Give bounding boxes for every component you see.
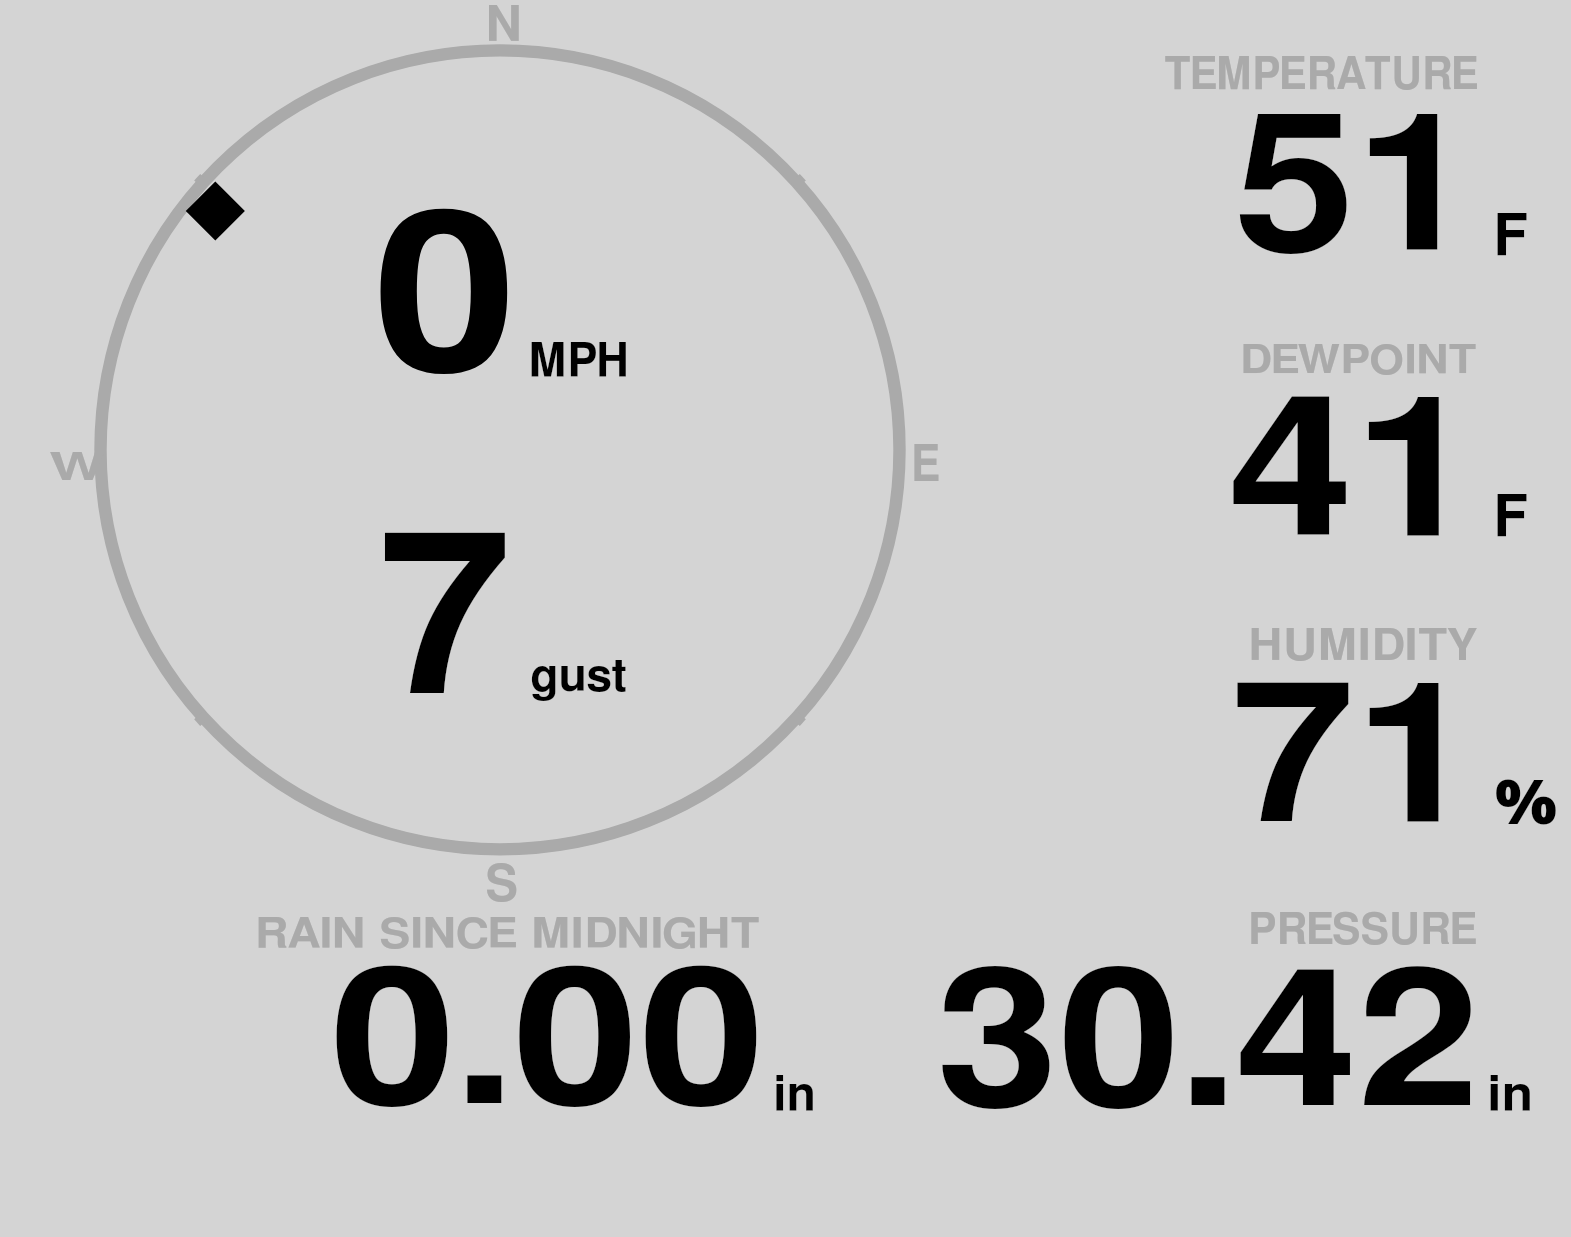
staticText: 7 (378, 513, 513, 738)
staticText: F (1493, 490, 1529, 548)
staticText: MPH (528, 340, 630, 386)
staticText: % (1495, 757, 1558, 842)
staticText: 0 (373, 192, 518, 413)
staticText: W (49, 450, 107, 488)
staticText: RAIN SINCE MIDNIGHT (255, 914, 760, 956)
staticText: 71 (1231, 666, 1478, 860)
staticText: 0.00 (330, 951, 765, 1141)
staticText: 30.42 (936, 952, 1480, 1143)
staticText: TEMPERATURE (1164, 53, 1479, 98)
button[interactable]: Temperature 51 degrees Fahrenheit (1000, 30, 1560, 300)
button[interactable]: Pressure 30.42 inches (880, 895, 1560, 1135)
button[interactable]: Humidity 71 percent (1000, 595, 1560, 865)
staticText: N (485, 1, 523, 51)
staticText: 41 (1228, 379, 1479, 574)
staticText: E (911, 441, 941, 491)
staticText: 51 (1234, 97, 1476, 288)
staticText: HUMIDITY (1248, 624, 1478, 668)
staticText: PRESSURE (1248, 909, 1478, 952)
staticText: in (773, 1072, 816, 1121)
button[interactable]: Rain since midnight 0.00 inches (170, 895, 850, 1135)
other: Weather station dashboard (0, 0, 1571, 1237)
staticText: in (1487, 1072, 1533, 1121)
button[interactable]: Dewpoint 41 degrees Fahrenheit (1000, 310, 1560, 580)
staticText: F (1493, 208, 1529, 266)
staticText: gust (530, 654, 627, 700)
button[interactable]: Wind dial, 0 miles per hour, gusting 7 (60, 10, 940, 890)
staticText: DEWPOINT (1240, 341, 1478, 382)
staticText: S (485, 861, 519, 911)
